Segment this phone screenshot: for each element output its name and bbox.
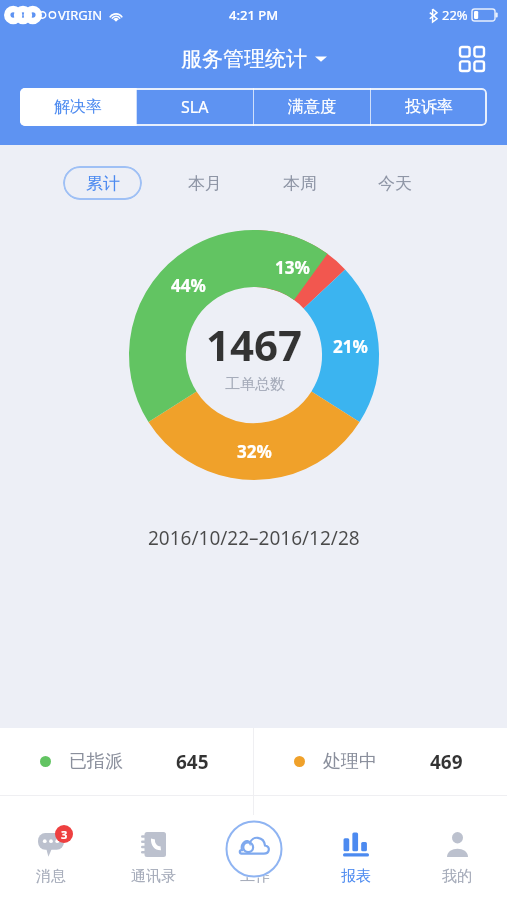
button[interactable]: 3 [0, 815, 102, 900]
button[interactable]: 工作 Work [225, 820, 283, 878]
staticText: SLA [181, 96, 209, 118]
staticText: 服务管理统计 [181, 46, 307, 72]
staticText: 1467 [206, 316, 303, 373]
button[interactable]: 通讯录 [102, 815, 204, 900]
button[interactable]: 报表 [305, 815, 406, 900]
staticText: 处理中 [323, 750, 377, 773]
button[interactable]: 今天 [365, 166, 425, 200]
staticText: 2016/10/22–2016/12/28 [148, 525, 360, 551]
staticText: 469 [430, 749, 463, 775]
button[interactable]: 待确认 [254, 796, 507, 863]
staticText: 我的 [442, 867, 472, 886]
button[interactable]: 工作 [204, 815, 305, 900]
staticText: 投诉率 [405, 97, 453, 117]
staticText: 645 [176, 749, 209, 775]
staticText: 103 [430, 817, 463, 843]
button[interactable]: 累计 [63, 166, 142, 200]
staticText: 累计 [86, 173, 120, 194]
staticText: 3 [61, 827, 68, 842]
staticText: 解决率 [54, 97, 102, 117]
staticText: 本月 [188, 173, 222, 194]
staticText: 44% [171, 274, 206, 297]
button[interactable]: 解决率 [20, 88, 136, 126]
staticText: 21% [333, 335, 368, 358]
button[interactable]: 处理中 [254, 728, 507, 795]
button[interactable]: 本周 [270, 166, 330, 200]
staticText: 32% [237, 440, 272, 463]
staticText: 已指派 [69, 750, 123, 773]
staticText: 满意度 [288, 97, 336, 117]
staticText: 22% [442, 6, 468, 24]
button[interactable]: 满意度 [253, 88, 370, 126]
staticText: 待确认 [323, 818, 377, 841]
button[interactable]: 已确认 [0, 796, 253, 863]
button[interactable]: 投诉率 [370, 88, 487, 126]
button[interactable]: 已指派 [0, 728, 253, 795]
staticText: 消息 [36, 867, 66, 886]
button[interactable]: Grid menu [455, 42, 489, 76]
staticText: 13% [275, 256, 310, 279]
staticText: 今天 [378, 173, 412, 194]
staticText: 工单总数 [225, 375, 285, 394]
staticText: 4:21 PM [229, 6, 279, 24]
button[interactable]: 本月 [175, 166, 235, 200]
button[interactable]: 我的 [406, 815, 507, 900]
button[interactable]: SLA [136, 88, 253, 126]
staticText: 通讯录 [131, 867, 176, 886]
staticText: VIRGIN [58, 6, 103, 24]
staticText: 工作 [240, 867, 270, 886]
staticText: 本周 [283, 173, 317, 194]
staticText: 已确认 [69, 818, 123, 841]
staticText: 报表 [341, 867, 371, 886]
button[interactable]: 服务管理统计 [181, 46, 327, 72]
